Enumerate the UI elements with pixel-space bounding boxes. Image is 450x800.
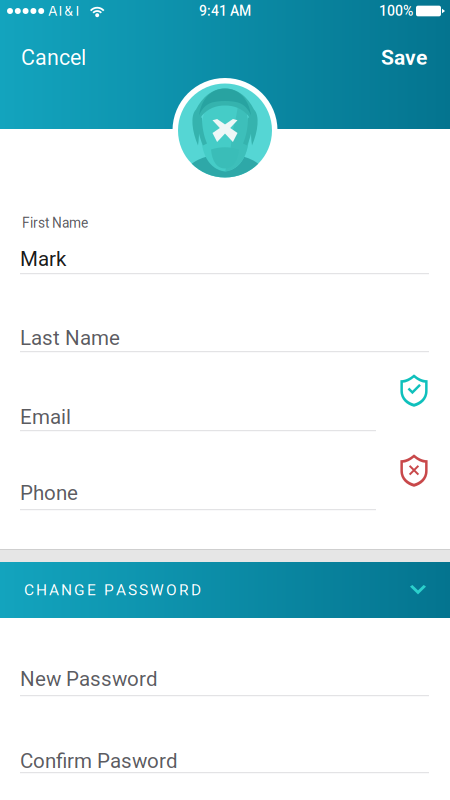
staticText: Mark xyxy=(20,247,66,271)
staticText: S xyxy=(128,581,137,599)
staticText: Confirm Pasword xyxy=(20,749,178,773)
staticText: G xyxy=(74,581,85,599)
button[interactable]: Cancel xyxy=(0,22,107,81)
staticText: Last Name xyxy=(20,326,120,350)
staticText: P xyxy=(104,581,114,599)
button[interactable]: Change profile photo xyxy=(172,78,277,183)
staticText: D xyxy=(191,581,201,599)
staticText: First Name xyxy=(22,215,88,231)
staticText: R xyxy=(179,581,189,599)
staticText: 100% xyxy=(379,3,413,19)
staticText: S xyxy=(139,581,148,599)
button[interactable]: C xyxy=(0,562,450,618)
staticText: O xyxy=(166,581,177,599)
staticText: N xyxy=(61,581,72,599)
staticText: AT&T xyxy=(48,3,81,19)
staticText: Save xyxy=(381,45,427,70)
staticText: H xyxy=(36,581,47,599)
staticText: New Password xyxy=(20,667,158,691)
staticText: E xyxy=(87,581,96,599)
staticText: Phone xyxy=(20,481,78,505)
button[interactable]: Save xyxy=(359,22,450,81)
staticText: Cancel xyxy=(21,45,86,70)
staticText: A xyxy=(116,581,126,599)
staticText: W xyxy=(150,581,164,599)
staticText: C xyxy=(24,581,34,599)
staticText: A xyxy=(49,581,59,599)
staticText: Email xyxy=(20,405,71,429)
staticText: 9:41 AM xyxy=(199,3,251,19)
